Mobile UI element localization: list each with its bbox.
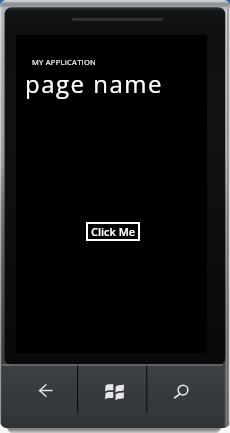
- button[interactable]: Back: [1, 366, 77, 428]
- staticText: page name: [25, 67, 164, 100]
- staticText: MY APPLICATION: [32, 57, 97, 67]
- button[interactable]: Click Me: [86, 222, 140, 241]
- staticText: Click Me: [91, 224, 136, 239]
- button[interactable]: Start: [78, 366, 147, 428]
- button[interactable]: Search: [147, 366, 224, 428]
